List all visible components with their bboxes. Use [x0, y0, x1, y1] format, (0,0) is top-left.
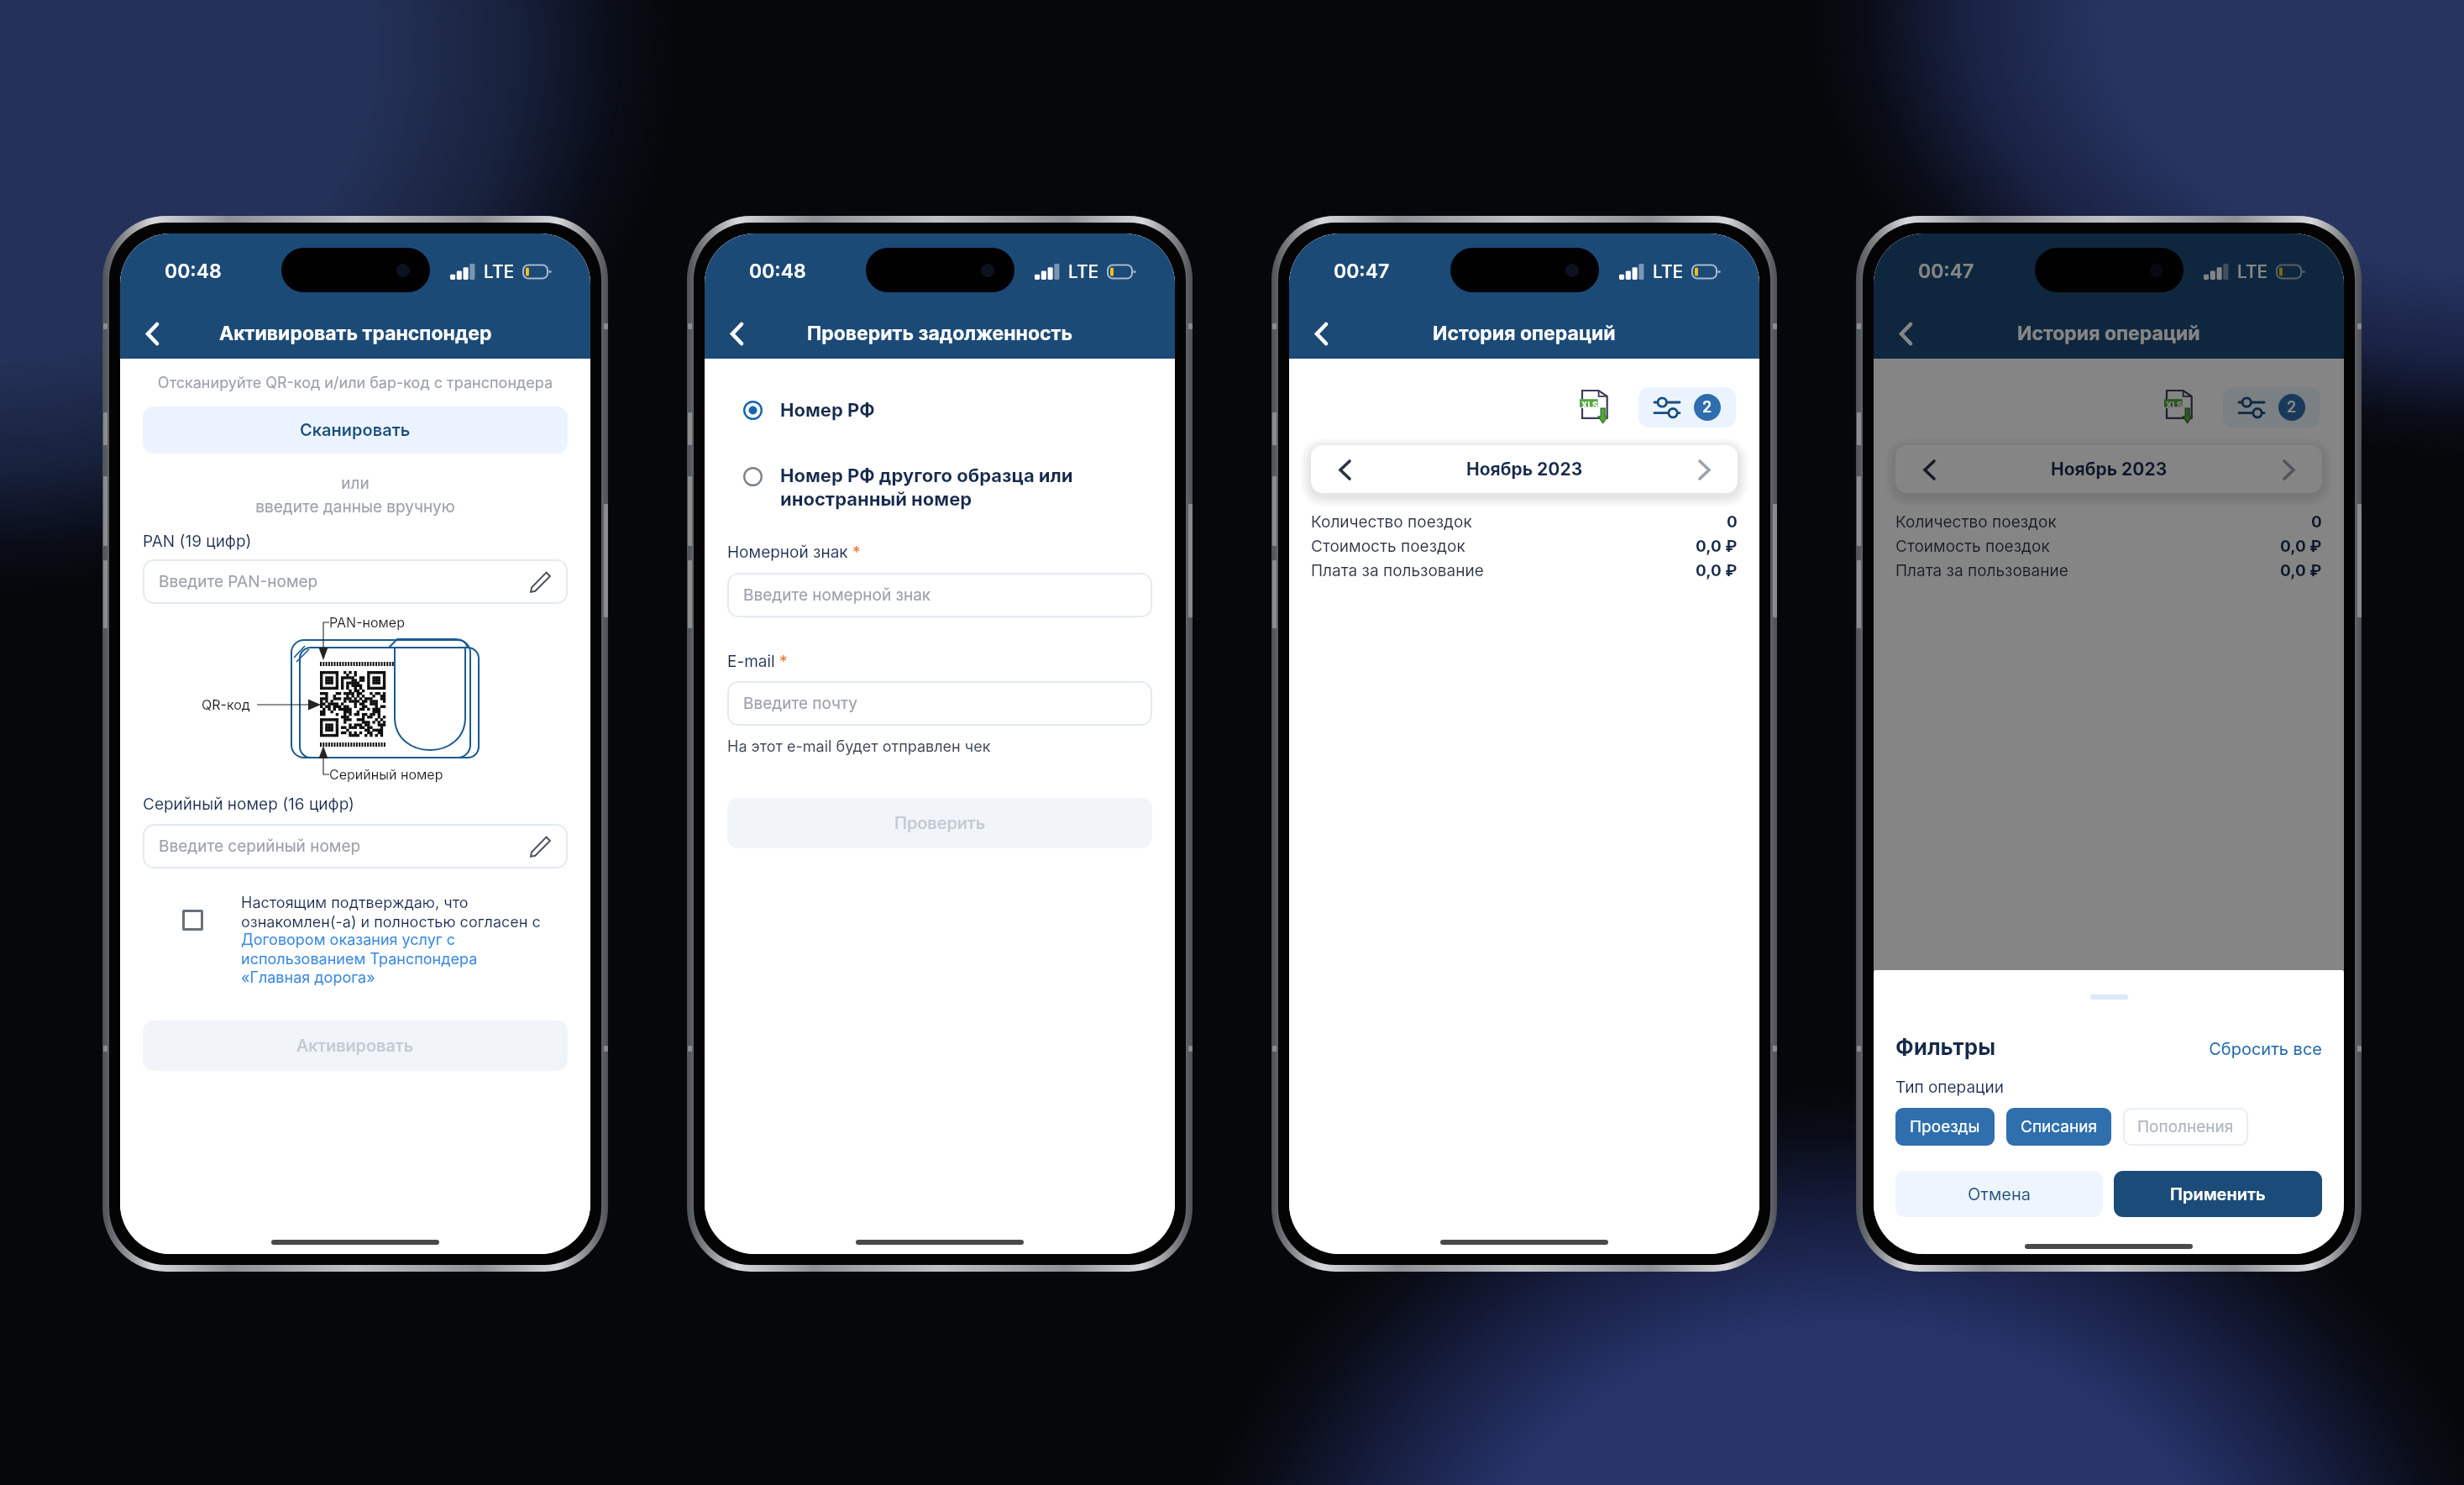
- staticText: LTE: [1653, 261, 1684, 282]
- button[interactable]: Back: [130, 312, 174, 355]
- staticText: Отсканируйте QR-код и/или бар-код с тран…: [120, 374, 590, 392]
- staticText: 0,0 ₽: [1696, 537, 1738, 556]
- staticText: Введите серийный номер: [159, 837, 361, 856]
- staticText: 00:48: [749, 260, 806, 283]
- staticText: Плата за пользование: [1895, 561, 2068, 580]
- button[interactable]: Download XLS: [1572, 383, 1619, 430]
- button[interactable]: Договором оказания услуг с использование…: [241, 931, 542, 986]
- staticText: Плата за пользование: [1311, 561, 1484, 580]
- staticText: История операций: [2017, 322, 2200, 345]
- staticText: Настоящим подтверждаю, что ознакомлен(-а…: [241, 894, 542, 931]
- staticText: Введите почту: [743, 694, 857, 713]
- staticText: Номер РФ другого образца или иностранный…: [780, 464, 1138, 511]
- staticText: Введите PAN-номер: [159, 572, 318, 591]
- staticText: E-mail: [727, 652, 775, 671]
- staticText: XLS: [1581, 400, 1598, 410]
- staticText: 0,0 ₽: [1696, 561, 1738, 580]
- staticText: Фильтры: [1895, 1034, 1996, 1060]
- staticText: История операций: [1433, 322, 1616, 345]
- staticText: Стоимость поездок: [1311, 537, 1465, 556]
- button[interactable]: Списания: [2006, 1108, 2111, 1146]
- button[interactable]: Активировать: [143, 1021, 568, 1071]
- staticText: 00:48: [165, 260, 222, 283]
- staticText: Номер РФ: [780, 399, 875, 422]
- button[interactable]: Номер РФ: [743, 399, 1130, 422]
- button[interactable]: Back: [715, 312, 758, 355]
- staticText: XLS: [2166, 400, 2183, 410]
- staticText: PAN-номер: [329, 614, 405, 630]
- staticText: 2: [1702, 398, 1712, 417]
- button[interactable]: Проезды: [1895, 1108, 1995, 1146]
- staticText: Введите номерной знак: [743, 585, 931, 605]
- staticText: PAN (19 цифр): [143, 532, 252, 551]
- staticText: *: [779, 652, 788, 671]
- staticText: Применить: [2170, 1184, 2266, 1204]
- staticText: 0,0 ₽: [2280, 537, 2322, 556]
- button[interactable]: Введите почту: [727, 681, 1152, 726]
- staticText: 0: [2311, 512, 2322, 532]
- button[interactable]: Применить: [2114, 1171, 2322, 1217]
- staticText: Проверить задолженность: [807, 322, 1073, 345]
- staticText: LTE: [484, 261, 515, 282]
- staticText: 0: [1727, 512, 1738, 532]
- staticText: 00:47: [1334, 260, 1390, 283]
- staticText: Проезды: [1910, 1117, 1980, 1136]
- staticText: 00:47: [1918, 260, 1974, 283]
- button[interactable]: Номер РФ другого образца или иностранный…: [743, 464, 1138, 511]
- staticText: Количество поездок: [1311, 512, 1472, 532]
- button[interactable]: Back: [1884, 312, 1927, 355]
- button[interactable]: Пополнения: [2123, 1108, 2248, 1146]
- staticText: Количество поездок: [1895, 512, 2057, 532]
- button[interactable]: Next month: [2270, 451, 2307, 488]
- staticText: Серийный номер (16 цифр): [143, 795, 355, 814]
- button[interactable]: Filters, 2 active: [2223, 387, 2320, 428]
- staticText: Сканировать: [300, 420, 411, 440]
- button[interactable]: Сбросить все: [1874, 1039, 2322, 1059]
- button[interactable]: Agree checkbox: [182, 910, 203, 931]
- button[interactable]: Previous month: [1326, 451, 1363, 488]
- staticText: На этот e-mail будет отправлен чек: [727, 737, 991, 756]
- staticText: Стоимость поездок: [1895, 537, 2050, 556]
- button[interactable]: Back: [1299, 312, 1343, 355]
- staticText: Списания: [2021, 1117, 2097, 1136]
- button[interactable]: Введите серийный номер: [143, 824, 568, 868]
- button[interactable]: Previous month: [1911, 451, 1948, 488]
- button[interactable]: Введите номерной знак: [727, 573, 1152, 617]
- staticText: 2: [2287, 398, 2297, 417]
- button[interactable]: Filters, 2 active: [1638, 387, 1736, 428]
- staticText: LTE: [1068, 261, 1099, 282]
- staticText: Серийный номер: [329, 766, 443, 782]
- staticText: Активировать: [296, 1036, 414, 1056]
- staticText: Активировать транспондер: [219, 322, 492, 345]
- staticText: Ноябрь 2023: [2051, 459, 2168, 480]
- staticText: LTE: [2237, 261, 2268, 282]
- button[interactable]: Проверить: [727, 798, 1152, 848]
- staticText: 0,0 ₽: [2280, 561, 2322, 580]
- staticText: Отмена: [1968, 1184, 2031, 1204]
- staticText: Проверить: [894, 813, 986, 833]
- staticText: или: [120, 474, 590, 493]
- button[interactable]: Отмена: [1895, 1171, 2103, 1217]
- button[interactable]: Download XLS: [2157, 383, 2204, 430]
- staticText: *: [852, 543, 861, 562]
- staticText: Ноябрь 2023: [1466, 459, 1583, 480]
- button[interactable]: Next month: [1685, 451, 1722, 488]
- staticText: Номерной знак: [727, 543, 848, 562]
- staticText: введите данные вручную: [120, 497, 590, 517]
- button[interactable]: Сканировать: [143, 407, 568, 454]
- staticText: Тип операции: [1895, 1078, 2004, 1097]
- button[interactable]: Введите PAN-номер: [143, 559, 568, 604]
- staticText: Пополнения: [2137, 1117, 2234, 1136]
- staticText: QR-код: [202, 696, 250, 712]
